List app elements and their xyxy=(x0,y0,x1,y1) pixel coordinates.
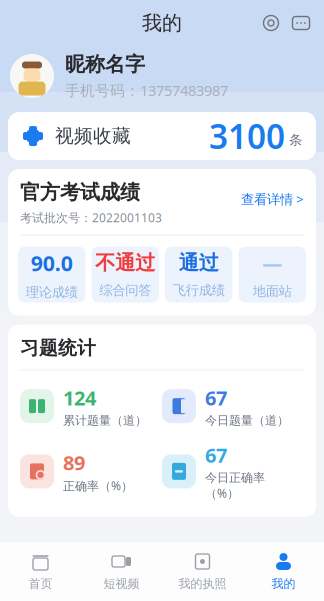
staticText: 90.0 xyxy=(31,249,73,277)
button[interactable]: 昵称名字 xyxy=(0,42,324,112)
staticText: 短视频 xyxy=(103,576,139,591)
button[interactable]: 首页 xyxy=(0,548,81,593)
staticText: 地面站 xyxy=(253,283,292,299)
staticText: 考试批次号：2022001103 xyxy=(20,210,162,225)
staticText: 查看详情 > xyxy=(241,190,304,208)
button[interactable]: 我的 xyxy=(243,548,324,593)
button[interactable]: 查看详情 > xyxy=(227,180,304,208)
staticText: 昵称名字 xyxy=(65,52,145,77)
staticText: 不通过 xyxy=(95,251,155,275)
staticText: 通过 xyxy=(179,251,219,275)
staticText: — xyxy=(262,250,282,276)
staticText: 飞行成绩 xyxy=(173,282,225,298)
staticText: 今日正确率（%） xyxy=(205,470,265,501)
button[interactable]: 我的执照 xyxy=(162,548,243,593)
staticText: 累计题量（道） xyxy=(63,413,147,428)
staticText: 89 xyxy=(63,449,85,476)
staticText: 条 xyxy=(289,132,302,148)
staticText: 习题统计 xyxy=(20,336,96,359)
staticText: 理论成绩 xyxy=(26,284,78,300)
staticText: 官方考试成绩 xyxy=(20,180,140,205)
button[interactable]: 视频收藏 xyxy=(0,112,324,160)
staticText: 我的 xyxy=(142,11,182,35)
staticText: 124 xyxy=(63,384,96,411)
staticText: 67 xyxy=(205,384,227,411)
staticText: 首页 xyxy=(28,576,52,591)
staticText: 我的执照 xyxy=(178,576,226,591)
staticText: 67 xyxy=(205,442,227,468)
staticText: 手机号码：13757483987 xyxy=(65,81,228,100)
staticText: 3100 xyxy=(209,114,285,158)
staticText: 正确率（%） xyxy=(63,478,133,494)
staticText: 我的 xyxy=(271,576,295,591)
button[interactable]: 消息 xyxy=(286,8,316,38)
button[interactable]: 设置 xyxy=(256,8,286,38)
staticText: 今日题量（道） xyxy=(205,413,289,428)
staticText: 综合问答 xyxy=(99,282,151,298)
staticText: 视频收藏 xyxy=(55,125,131,147)
button[interactable]: 短视频 xyxy=(81,548,162,593)
